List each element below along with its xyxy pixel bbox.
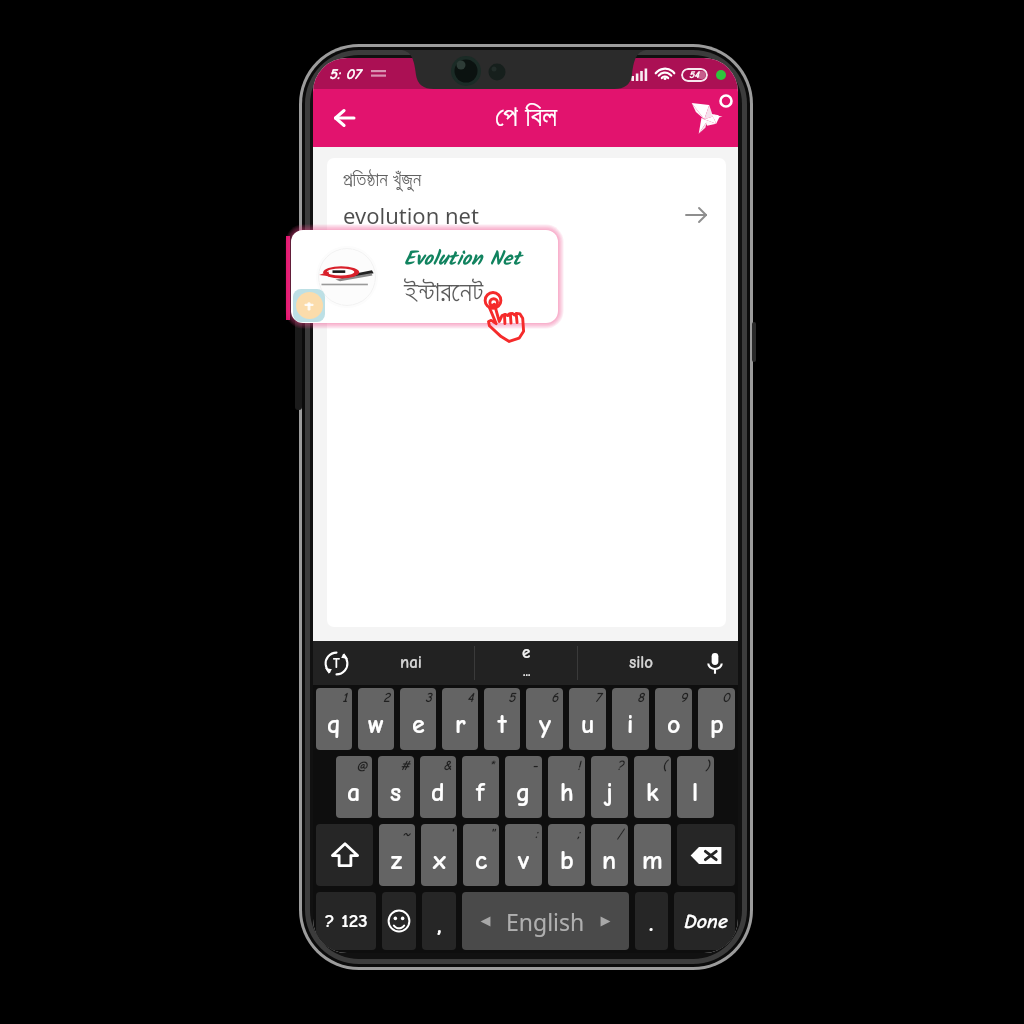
button[interactable]: Back (322, 96, 366, 140)
staticText: ( (662, 757, 667, 773)
staticText: a (347, 778, 361, 808)
button[interactable]: u (569, 688, 606, 750)
button[interactable]: English (462, 892, 629, 950)
button[interactable]: App logo (681, 94, 733, 146)
button[interactable]: r (442, 688, 478, 750)
button[interactable]: silo (578, 641, 691, 685)
staticText: পে বিল (495, 95, 557, 134)
staticText: n (602, 846, 617, 876)
staticText: r (455, 710, 466, 740)
staticText: t (498, 710, 507, 740)
button[interactable]: y (526, 688, 563, 750)
staticText: 2 (383, 689, 390, 705)
button[interactable]: i (612, 688, 649, 750)
staticText: 7 (595, 689, 602, 705)
button[interactable]: a (336, 756, 372, 818)
button[interactable]: k (634, 756, 671, 818)
staticText: j (606, 778, 613, 808)
button[interactable]: b (548, 824, 585, 886)
staticText: silo (629, 653, 654, 673)
staticText: c (475, 846, 488, 876)
staticText: 4 (467, 689, 474, 705)
staticText: & (443, 757, 452, 773)
staticText: z (391, 846, 403, 876)
button[interactable]: s (378, 756, 414, 818)
staticText: l (692, 778, 699, 808)
button[interactable]: . (635, 892, 668, 950)
staticText: h (560, 778, 574, 808)
staticText: f (476, 778, 485, 808)
staticText: 6 (551, 689, 559, 705)
button[interactable]: Evolution Net (291, 230, 558, 323)
button[interactable]: e (475, 641, 577, 685)
staticText: d (431, 778, 445, 808)
staticText: 5: 07 (329, 65, 361, 82)
staticText: ! (577, 757, 581, 773)
staticText: ইন্টারনেট (404, 279, 484, 307)
staticText: e (522, 643, 531, 663)
staticText: ? (617, 757, 624, 773)
button[interactable]: nai (360, 641, 474, 685)
button[interactable]: x (421, 824, 457, 886)
button[interactable]: c (463, 824, 499, 886)
staticText: ... (523, 663, 531, 679)
button[interactable]: j (591, 756, 628, 818)
staticText: b (560, 846, 574, 876)
staticText: 9 (680, 689, 688, 705)
staticText: evolution net (343, 200, 479, 230)
button[interactable]: Shift (316, 824, 373, 886)
staticText: i (627, 710, 634, 740)
staticText: s (390, 778, 402, 808)
button[interactable]: Emoji (382, 892, 416, 950)
button[interactable]: q (316, 688, 352, 750)
button[interactable]: Voice input (691, 641, 738, 685)
staticText: 3 (425, 689, 432, 705)
staticText: 5 (508, 689, 516, 705)
staticText: o (667, 710, 681, 740)
button[interactable]: Done (674, 892, 735, 950)
button[interactable]: , (422, 892, 456, 950)
button[interactable]: App shortcut (293, 289, 325, 322)
staticText: y (539, 710, 551, 740)
button[interactable]: ? 123 (316, 892, 376, 950)
staticText: u (581, 710, 595, 740)
staticText: ; (577, 825, 581, 841)
staticText: q (327, 710, 341, 740)
staticText: e (412, 710, 425, 740)
staticText: @ (356, 757, 368, 773)
staticText: 0 (722, 689, 731, 705)
button[interactable]: l (677, 756, 714, 818)
button[interactable]: z (379, 824, 415, 886)
button[interactable]: f (462, 756, 499, 818)
button[interactable]: h (548, 756, 585, 818)
staticText: nai (400, 653, 422, 673)
button[interactable]: p (698, 688, 735, 750)
staticText: প্রতিষ্ঠান খুঁজুন (343, 166, 422, 192)
button[interactable]: d (420, 756, 456, 818)
button[interactable]: Switch language (313, 641, 360, 685)
staticText: g (516, 778, 531, 808)
button[interactable]: evolution net (327, 199, 726, 231)
button[interactable]: n (591, 824, 628, 886)
button[interactable]: v (505, 824, 542, 886)
staticText: # (400, 757, 410, 773)
staticText: p (710, 710, 724, 740)
staticText: 1 (342, 689, 348, 705)
button[interactable]: g (505, 756, 542, 818)
button[interactable]: m (634, 824, 671, 886)
staticText: " (490, 825, 495, 841)
staticText: ) (705, 757, 710, 773)
staticText: English (506, 906, 585, 937)
button[interactable]: w (358, 688, 394, 750)
button[interactable]: e (400, 688, 436, 750)
staticText: ~ (402, 825, 411, 841)
button[interactable]: Backspace (677, 824, 735, 886)
staticText: - (532, 757, 538, 773)
button[interactable]: o (655, 688, 692, 750)
staticText: Done (683, 910, 727, 933)
button[interactable]: t (484, 688, 520, 750)
staticText: / (617, 825, 624, 841)
staticText: Evolution Net (404, 244, 522, 276)
staticText: 54 (689, 69, 699, 81)
